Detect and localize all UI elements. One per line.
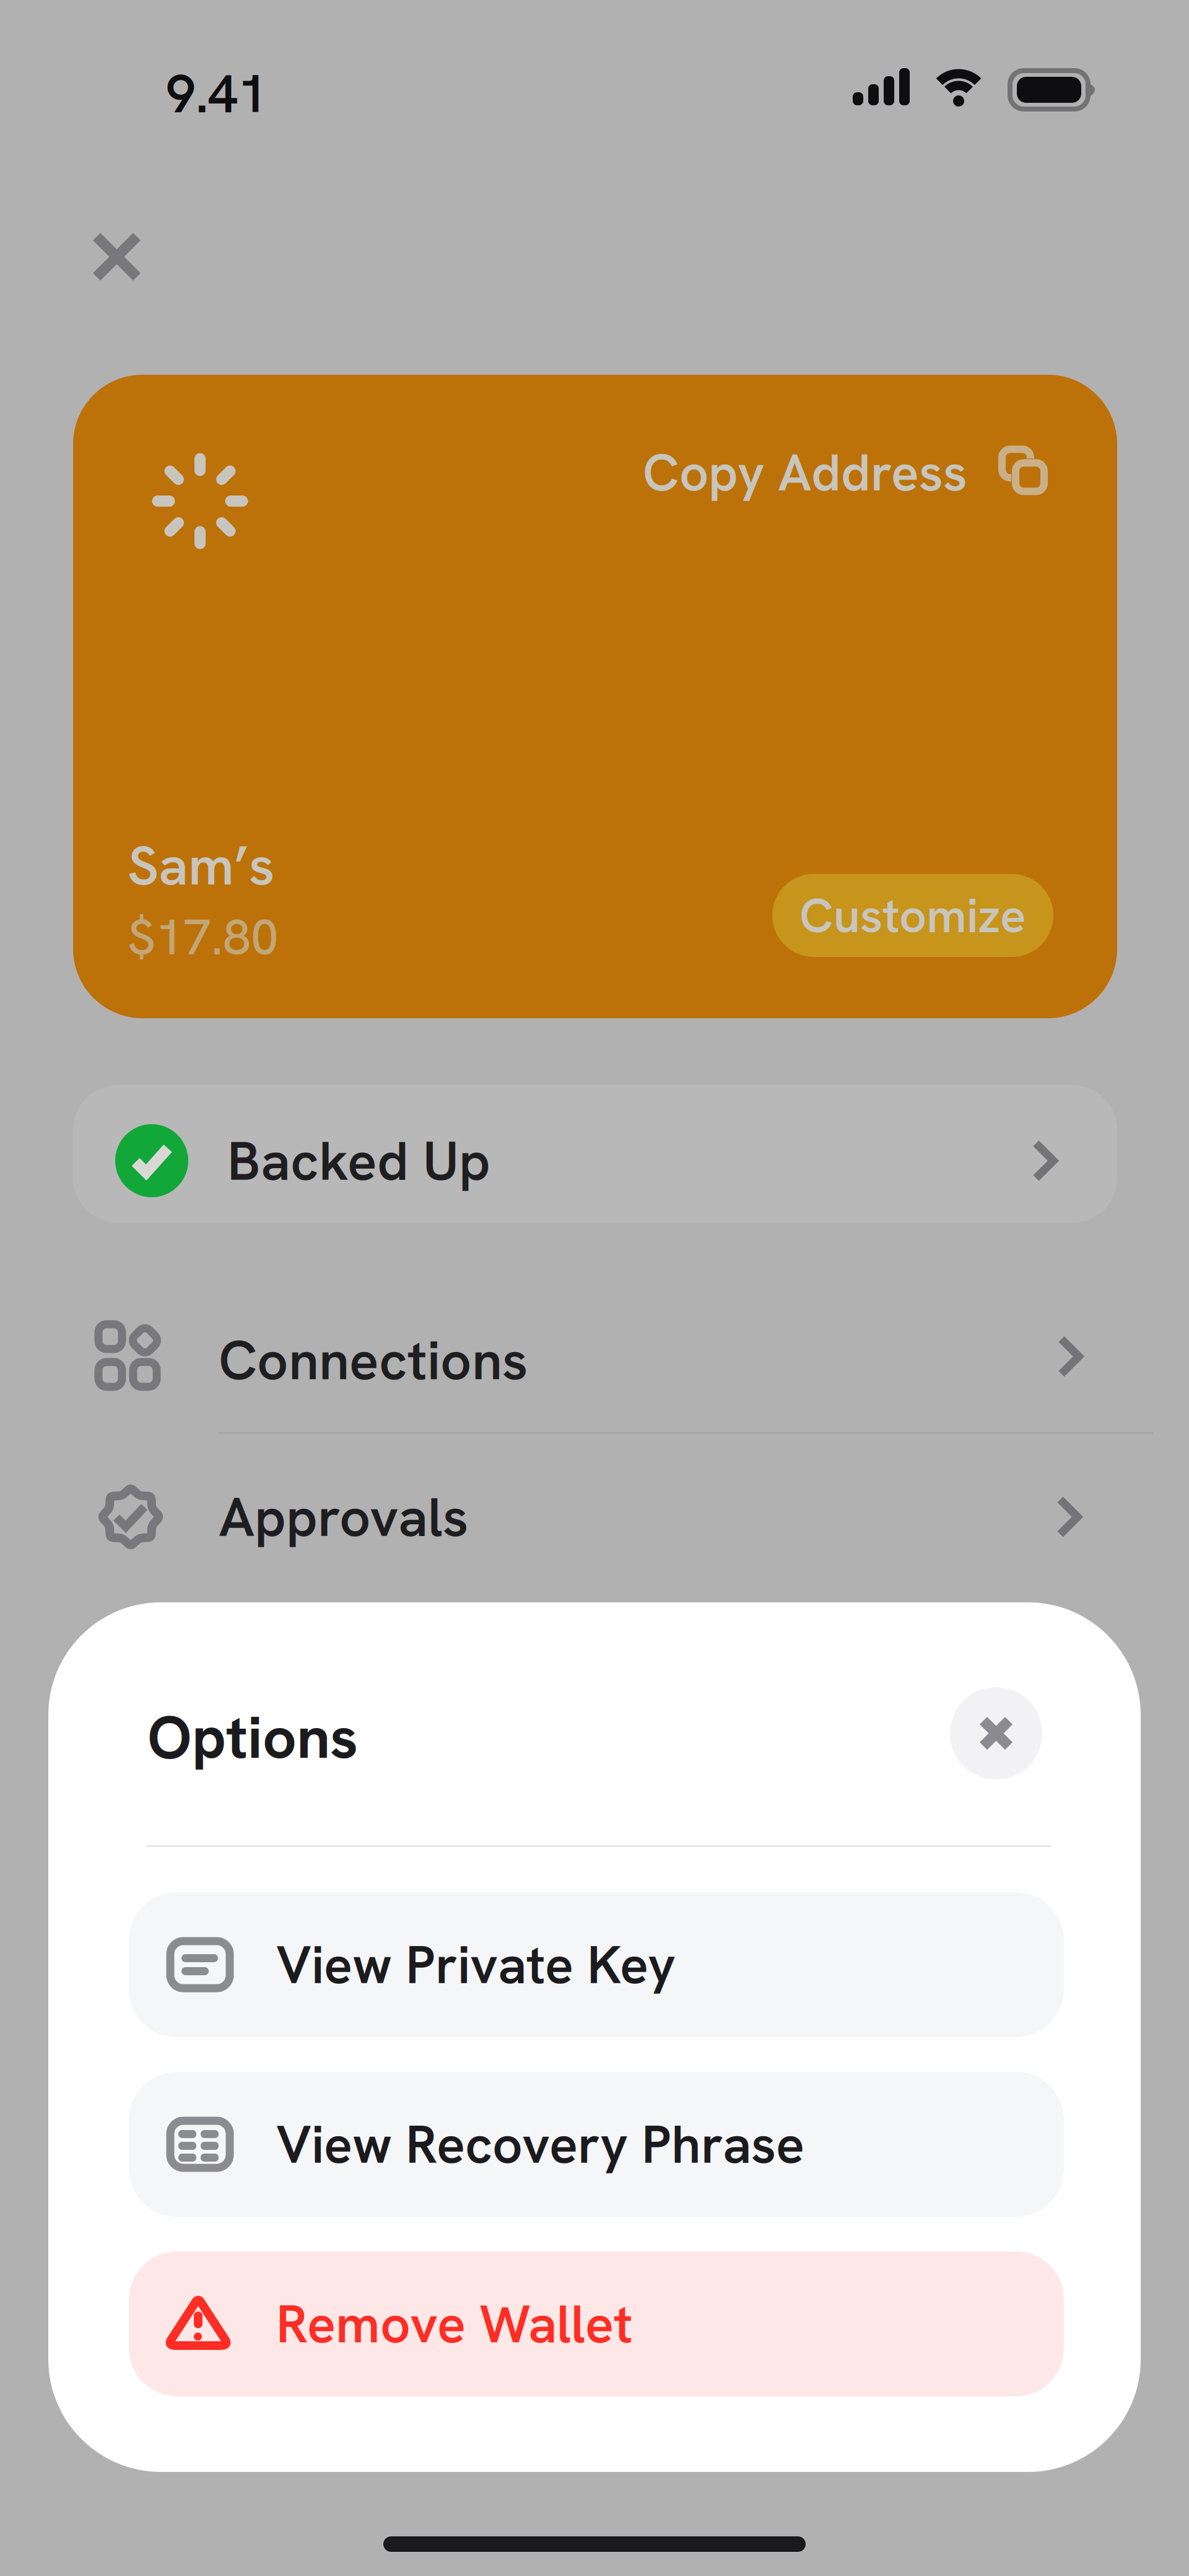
button[interactable]: Copy Address (643, 432, 1048, 513)
staticText: Copy Address (643, 439, 967, 506)
button[interactable]: Connections (36, 1288, 1153, 1432)
staticText: Approvals (219, 1481, 468, 1552)
staticText: View Private Key (276, 1930, 676, 1999)
staticText: $17.80 (128, 905, 279, 969)
button[interactable]: Remove Wallet (129, 2251, 1064, 2396)
staticText: View Recovery Phrase (276, 2110, 804, 2179)
staticText: Backed Up (227, 1125, 490, 1196)
staticText: 9.41 (166, 59, 268, 128)
staticText: Remove Wallet (276, 2289, 633, 2358)
button[interactable]: Close (67, 207, 167, 307)
button[interactable]: Close (950, 1687, 1042, 1779)
button[interactable]: Customize (772, 874, 1053, 957)
staticText: Connections (219, 1325, 528, 1396)
staticText: Sam’s (128, 830, 274, 901)
button[interactable]: View Recovery Phrase (129, 2072, 1064, 2217)
staticText: Options (147, 1698, 358, 1776)
button[interactable]: View Private Key (129, 1892, 1064, 2037)
button[interactable]: Backed Up (73, 1085, 1117, 1223)
button[interactable]: Approvals (36, 1434, 1153, 1578)
staticText: Customize (799, 884, 1026, 947)
